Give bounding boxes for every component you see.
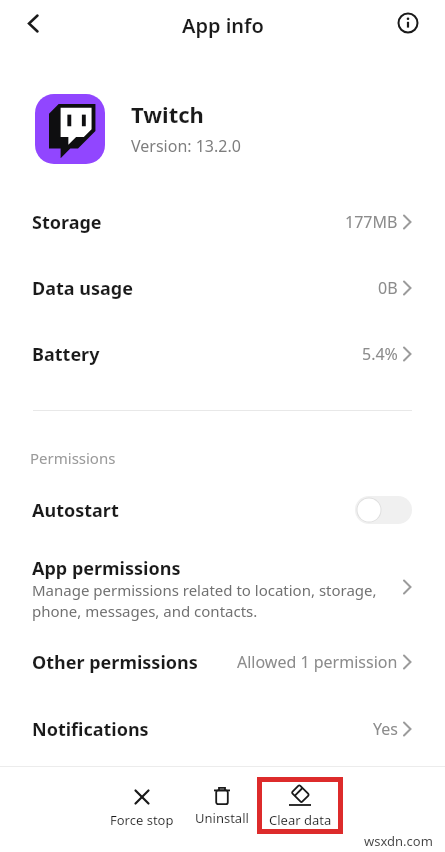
button[interactable]: Force stop bbox=[102, 775, 182, 837]
staticText: 177MB bbox=[345, 211, 398, 233]
staticText: Data usage bbox=[32, 276, 133, 301]
staticText: Clear data bbox=[269, 811, 332, 829]
staticText: wsxdn.com bbox=[364, 832, 433, 850]
staticText: Other permissions bbox=[32, 650, 198, 675]
staticText: Force stop bbox=[110, 811, 174, 829]
button[interactable]: Clear data bbox=[260, 775, 340, 837]
staticText: Version: 13.2.0 bbox=[131, 135, 241, 157]
button[interactable] bbox=[13, 3, 53, 43]
staticText: Storage bbox=[32, 210, 102, 235]
staticText: Battery bbox=[32, 342, 100, 367]
button[interactable] bbox=[388, 3, 428, 43]
staticText: 0B bbox=[378, 277, 398, 299]
button[interactable]: Data usage bbox=[0, 255, 445, 321]
staticText: Permissions bbox=[30, 448, 116, 468]
button[interactable]: Notifications bbox=[0, 696, 445, 762]
button[interactable]: Battery bbox=[0, 321, 445, 387]
button[interactable]: Storage bbox=[0, 189, 445, 255]
staticText: Notifications bbox=[32, 717, 149, 742]
staticText: Twitch bbox=[131, 99, 204, 129]
button[interactable]: Other permissions bbox=[0, 629, 445, 695]
staticText: Autostart bbox=[32, 498, 119, 523]
staticText: App info bbox=[182, 12, 264, 39]
staticText: Manage permissions related to location, … bbox=[32, 580, 377, 622]
button[interactable]: Autostart bbox=[0, 477, 445, 543]
button[interactable]: App permissions bbox=[0, 545, 445, 629]
staticText: 5.4% bbox=[362, 343, 398, 365]
button[interactable]: Uninstall bbox=[182, 773, 262, 835]
staticText: App permissions bbox=[32, 556, 181, 581]
staticText: Yes bbox=[373, 718, 398, 740]
staticText: Allowed 1 permission bbox=[237, 651, 398, 673]
staticText: Uninstall bbox=[195, 809, 249, 827]
